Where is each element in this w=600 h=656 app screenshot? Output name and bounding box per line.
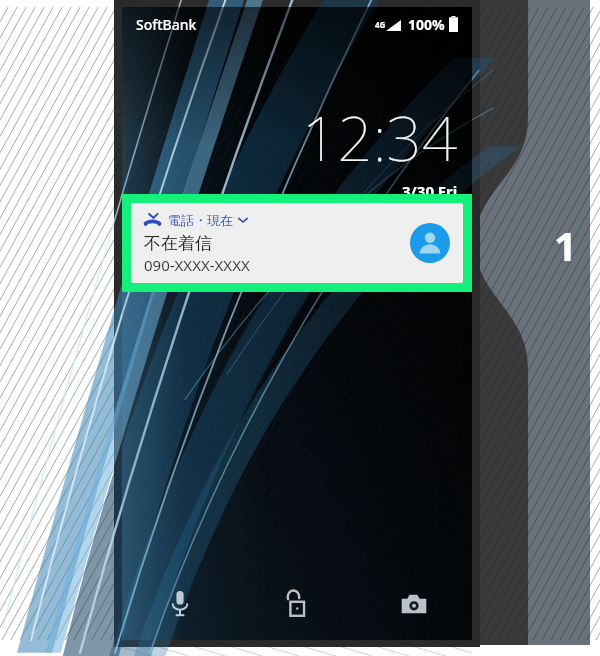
staticText: 100% xyxy=(408,15,445,34)
staticText: 4G xyxy=(375,19,386,30)
staticText: 電話・現在 xyxy=(168,212,233,228)
button[interactable]: Camera xyxy=(355,568,472,640)
staticText: 12:34 xyxy=(302,95,458,179)
staticText: 090-XXXX-XXXX xyxy=(144,255,250,275)
staticText: 不在着信 xyxy=(144,233,212,254)
button[interactable]: 電話・現在 xyxy=(131,203,463,283)
staticText: 1 xyxy=(554,218,577,270)
staticText: 3/30 Fri xyxy=(402,181,458,201)
button[interactable]: Unlock xyxy=(238,568,355,640)
button[interactable]: Voice search xyxy=(122,568,238,640)
staticText: SoftBank xyxy=(136,15,197,34)
